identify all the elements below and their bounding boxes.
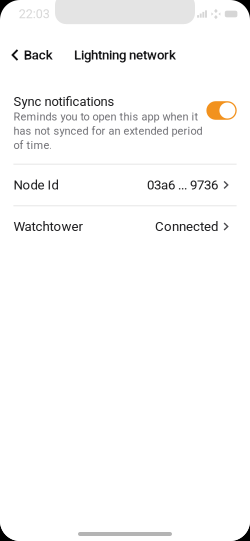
staticText: Node Id — [13, 177, 58, 193]
button[interactable]: Sync notifications — [206, 101, 237, 120]
staticText: Reminds you to open this app when it has… — [13, 110, 202, 152]
staticText: Back — [24, 47, 53, 63]
staticText: 03a6 ... 9736 — [147, 177, 218, 193]
staticText: Connected — [155, 219, 218, 234]
staticText: 22:03 — [19, 7, 50, 21]
button[interactable]: Watchtower — [0, 206, 250, 247]
staticText: Sync notifications — [13, 94, 114, 109]
staticText: Lightning network — [74, 47, 176, 63]
button[interactable]: Back — [0, 35, 61, 75]
button[interactable]: Node Id — [0, 165, 250, 205]
staticText: Watchtower — [13, 219, 82, 234]
